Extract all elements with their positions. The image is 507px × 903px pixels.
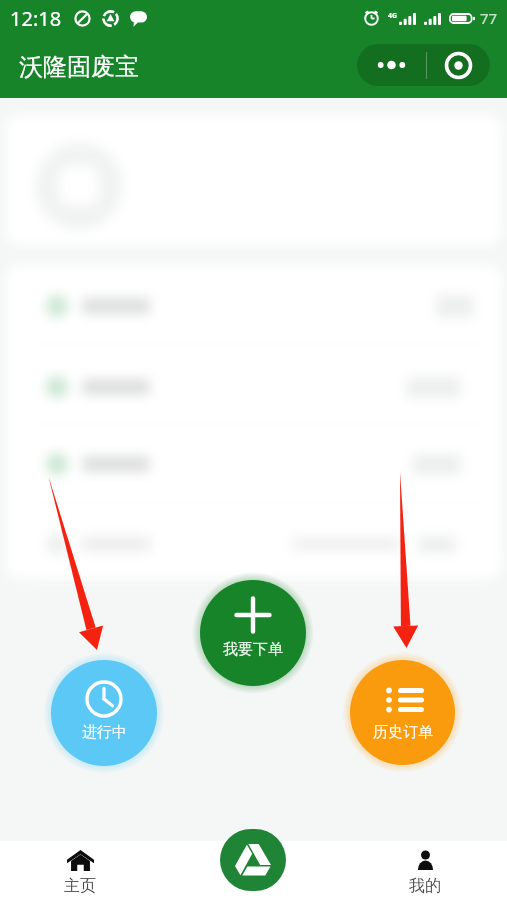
button[interactable]: 我要下单 — [200, 580, 306, 686]
staticText: 我的 — [409, 876, 441, 896]
button[interactable]: 历史订单 — [350, 660, 455, 765]
button[interactable]: Scan — [427, 44, 490, 86]
staticText: 12:18 — [10, 5, 62, 32]
staticText: 我要下单 — [223, 640, 283, 659]
button[interactable]: 主页 — [40, 845, 120, 903]
button[interactable] — [6, 349, 501, 425]
staticText: 历史订单 — [373, 723, 433, 742]
button[interactable]: 我的 — [385, 845, 465, 903]
button[interactable] — [6, 268, 501, 344]
staticText: 沃隆固废宝 — [19, 52, 139, 82]
staticText: 主页 — [64, 876, 96, 896]
staticText: 进行中 — [82, 723, 127, 742]
staticText: 77 — [480, 8, 498, 28]
staticText: 4G — [388, 11, 398, 20]
button[interactable]: 进行中 — [51, 660, 157, 766]
button[interactable] — [6, 426, 501, 502]
button[interactable]: Drive — [220, 829, 286, 891]
button[interactable] — [6, 506, 501, 582]
button[interactable] — [6, 116, 501, 244]
button[interactable]: More options — [357, 44, 426, 86]
